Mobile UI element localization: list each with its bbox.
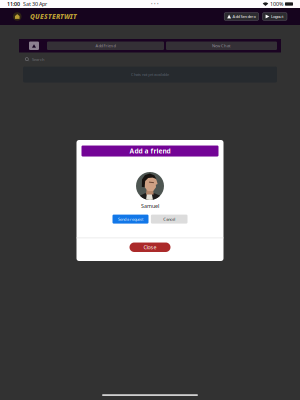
staticText: 100% xyxy=(270,0,283,8)
staticText: Send a request xyxy=(118,216,143,222)
button[interactable]: Close xyxy=(129,242,170,252)
staticText: Search xyxy=(32,57,44,62)
button[interactable]: Home xyxy=(29,41,39,50)
staticText: 11:00 xyxy=(7,0,20,8)
button[interactable]: Add Friend xyxy=(47,41,164,50)
staticText: Sat 30 Apr xyxy=(23,0,47,8)
button[interactable]: Cancel xyxy=(151,215,187,224)
staticText: Add Sendero xyxy=(233,14,256,19)
button[interactable]: Add a friend xyxy=(81,145,218,156)
staticText: Logout xyxy=(271,14,284,19)
staticText: Chats not yet available xyxy=(131,72,169,77)
button[interactable]: Send a request xyxy=(112,215,148,224)
button[interactable]: Add Sendero xyxy=(224,13,259,20)
staticText: New Chat xyxy=(212,43,231,48)
staticText: • • • xyxy=(151,0,159,8)
staticText: QUESTERTWIT xyxy=(30,12,77,21)
staticText: Close xyxy=(143,244,156,251)
button[interactable]: New Chat xyxy=(166,41,277,50)
staticText: Samuel xyxy=(141,202,159,210)
staticText: Cancel xyxy=(163,216,175,222)
staticText: Add a friend xyxy=(129,147,170,155)
button[interactable]: Logout xyxy=(263,13,287,20)
staticText: Add Friend xyxy=(95,43,115,48)
